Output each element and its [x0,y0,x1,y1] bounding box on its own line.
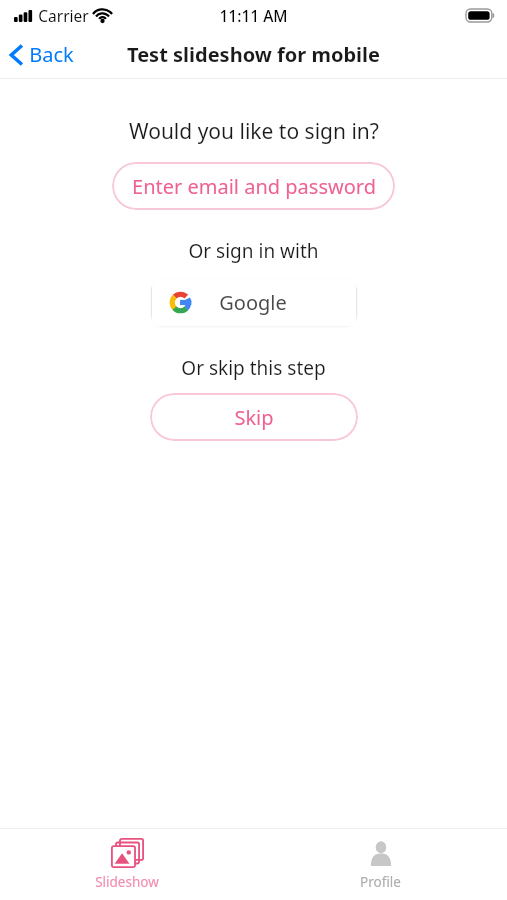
button[interactable]: Google [152,279,356,326]
button[interactable]: Skip [150,393,358,441]
staticText: Profile [360,873,401,891]
staticText: Enter email and password [132,173,376,200]
staticText: 11:11 AM [219,5,288,26]
staticText: Or skip this step [181,355,326,381]
staticText: Skip [234,404,274,431]
staticText: Or sign in with [188,238,319,264]
staticText: Would you like to sign in? [129,117,379,146]
button[interactable]: Back [0,35,86,74]
staticText: Google [219,289,287,316]
staticText: Back [29,41,74,68]
button[interactable]: Profile [334,832,427,897]
staticText: Carrier [38,5,89,26]
other: Slideshow [111,838,144,868]
staticText: Slideshow [95,873,159,891]
button[interactable]: Slideshow [69,832,185,897]
staticText: Test slideshow for mobile [127,41,380,68]
button[interactable]: Enter email and password [112,162,395,210]
other: Profile [366,838,396,868]
